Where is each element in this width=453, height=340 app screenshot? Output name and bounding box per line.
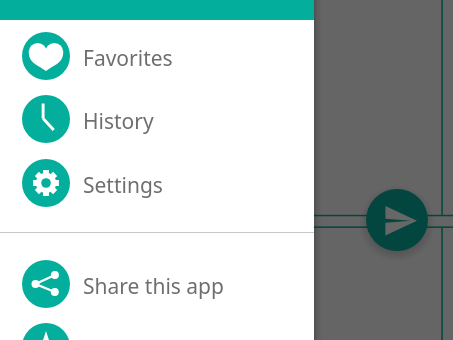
button[interactable]: Settings [0,151,314,214]
staticText: Settings [83,171,163,200]
button[interactable]: Send [366,189,428,251]
button[interactable]: Rate this app [0,315,314,340]
staticText: Share this app [83,272,224,301]
staticText: Favorites [83,44,173,73]
button[interactable]: Share this app [0,252,314,315]
staticText: History [83,107,154,136]
button[interactable]: Favorites [0,24,314,87]
button[interactable]: History [0,87,314,150]
